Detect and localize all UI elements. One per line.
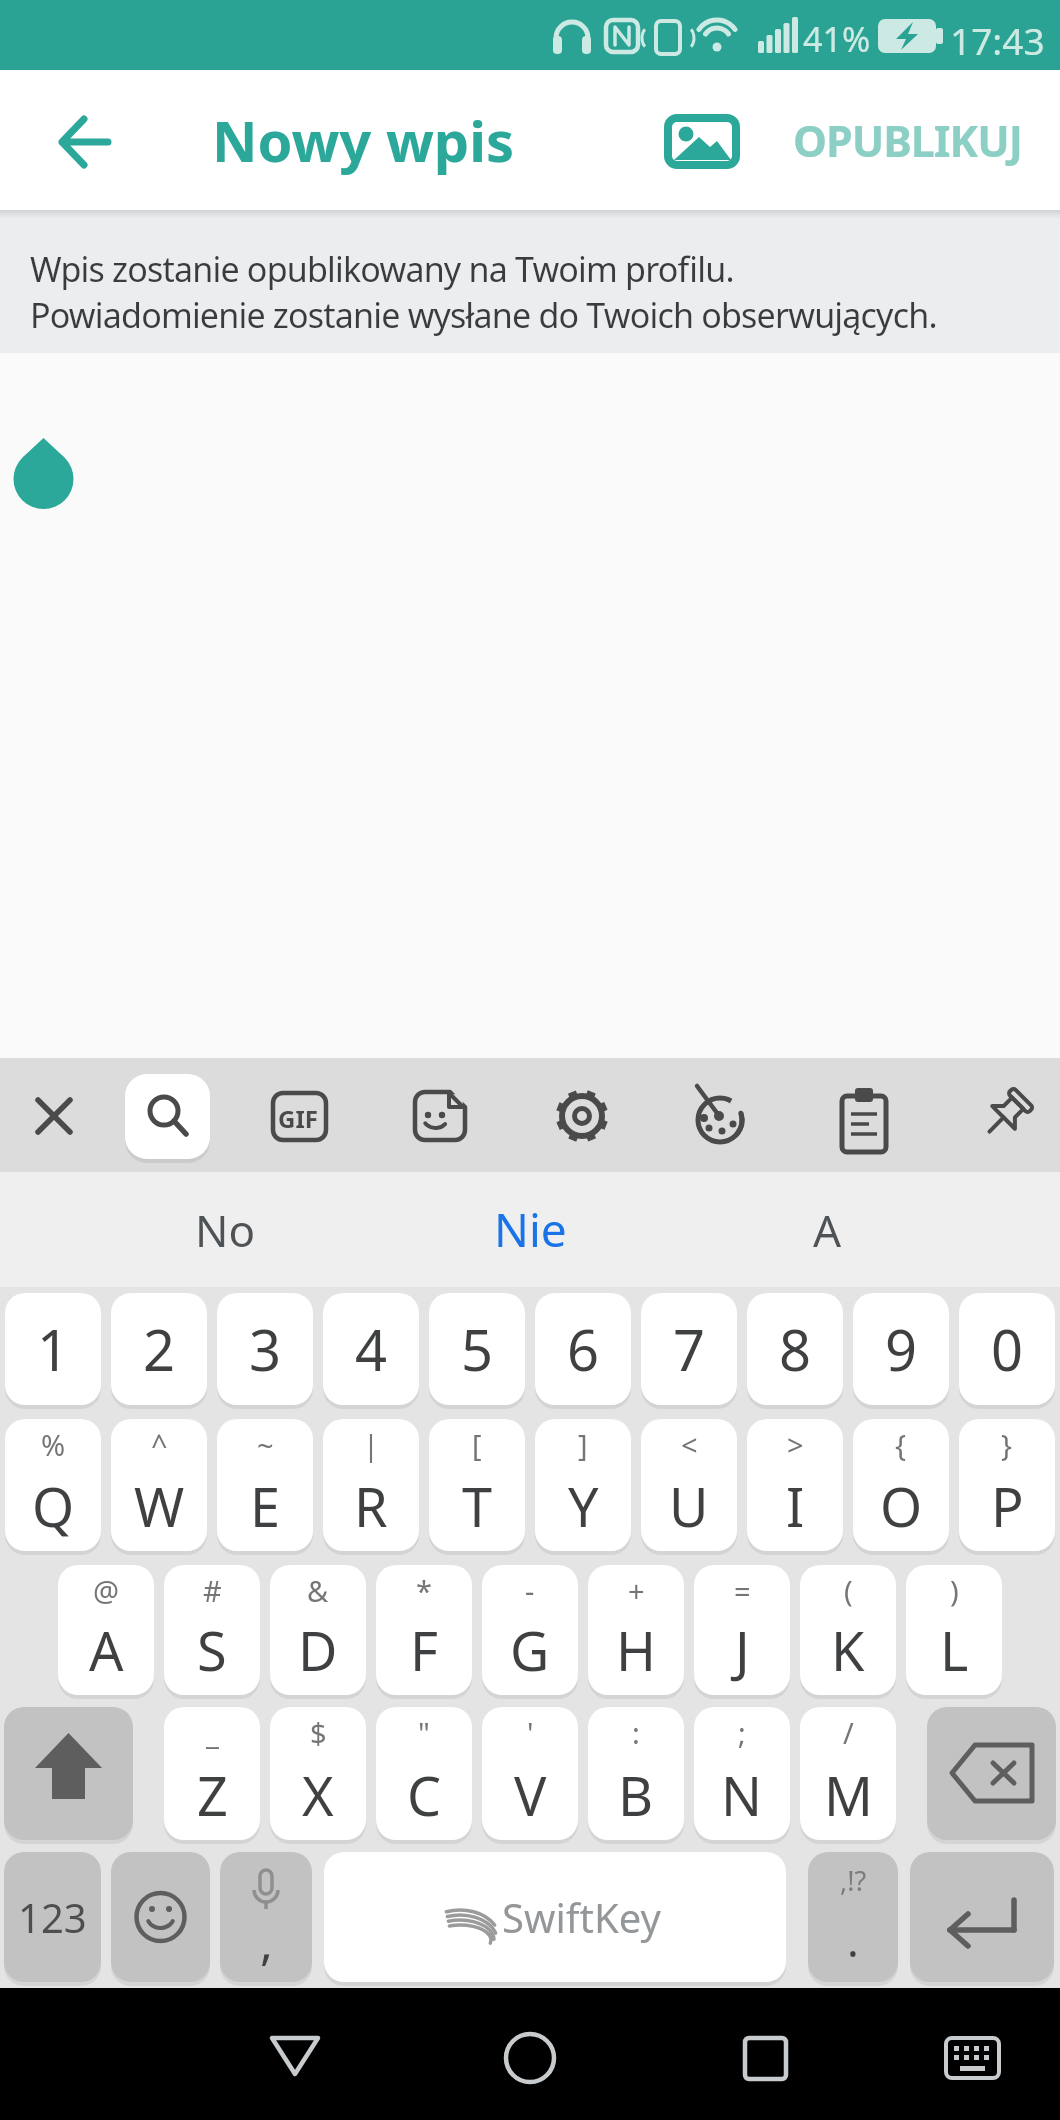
button[interactable]: 1 (5, 1293, 101, 1405)
staticText: S (197, 1613, 227, 1687)
button[interactable]: ,!? (808, 1852, 898, 1982)
staticText: @ (93, 1571, 120, 1610)
button[interactable]: > (747, 1419, 843, 1551)
staticText: 6 (567, 1311, 600, 1387)
button[interactable] (922, 2008, 1022, 2103)
button[interactable] (9, 1071, 99, 1161)
button[interactable]: ( (800, 1565, 896, 1695)
button[interactable] (111, 1852, 210, 1982)
button[interactable] (40, 97, 130, 187)
staticText: - (525, 1571, 535, 1610)
staticText: Nowy wpis (212, 102, 515, 178)
staticText: Nie (494, 1198, 567, 1261)
staticText: L (940, 1613, 969, 1687)
button[interactable]: 3 (217, 1293, 313, 1405)
button[interactable] (960, 1071, 1050, 1161)
staticText: H (616, 1613, 657, 1687)
staticText: J (735, 1613, 750, 1687)
button[interactable] (819, 1071, 909, 1161)
button[interactable]: - (482, 1565, 578, 1695)
button[interactable]: ) (906, 1565, 1002, 1695)
button[interactable]: [ (429, 1419, 525, 1551)
button[interactable]: ' (482, 1707, 578, 1840)
staticText: ( (844, 1571, 853, 1610)
button[interactable]: $ (270, 1707, 366, 1840)
button[interactable]: # (164, 1565, 260, 1695)
staticText: . (847, 1910, 859, 1970)
button[interactable]: % (5, 1419, 101, 1551)
button[interactable]: * (376, 1565, 472, 1695)
button[interactable]: } (959, 1419, 1055, 1551)
button[interactable]: < (641, 1419, 737, 1551)
button[interactable] (537, 1071, 627, 1161)
button[interactable]: ; (694, 1707, 790, 1840)
button[interactable]: A (707, 1172, 947, 1287)
staticText: ,!? (840, 1862, 867, 1899)
staticText: Wpis zostanie opublikowany na Twoim prof… (30, 246, 734, 292)
staticText: | (363, 1425, 379, 1464)
staticText: A (89, 1613, 124, 1687)
button[interactable] (480, 2008, 580, 2103)
staticText: [ (472, 1425, 482, 1464)
button[interactable]: No (105, 1172, 345, 1287)
button[interactable]: & (270, 1565, 366, 1695)
button[interactable]: 6 (535, 1293, 631, 1405)
button[interactable]: = (694, 1565, 790, 1695)
button[interactable]: 2 (111, 1293, 207, 1405)
button[interactable]: + (588, 1565, 684, 1695)
button[interactable] (125, 1074, 210, 1159)
staticText: T (462, 1469, 493, 1543)
button[interactable]: / (800, 1707, 896, 1840)
button[interactable]: " (376, 1707, 472, 1840)
button[interactable]: Nie (410, 1172, 650, 1287)
button[interactable] (715, 2008, 815, 2103)
staticText: No (195, 1200, 256, 1260)
button[interactable] (650, 95, 750, 185)
button[interactable]: 8 (747, 1293, 843, 1405)
button[interactable]: ~ (217, 1419, 313, 1551)
button[interactable]: { (853, 1419, 949, 1551)
button[interactable] (245, 2008, 345, 2103)
staticText: , (260, 1909, 273, 1974)
button[interactable]: ^ (111, 1419, 207, 1551)
staticText: F (410, 1613, 439, 1687)
button[interactable]: SwiftKey (324, 1852, 786, 1982)
staticText: B (618, 1758, 654, 1832)
button[interactable]: 9 (853, 1293, 949, 1405)
button[interactable]: | (323, 1419, 419, 1551)
button[interactable]: _ (164, 1707, 260, 1840)
button[interactable] (927, 1707, 1056, 1840)
staticText: Z (197, 1758, 228, 1832)
staticText: R (354, 1469, 388, 1543)
button[interactable]: 123 (4, 1852, 101, 1982)
button[interactable] (910, 1852, 1054, 1982)
staticText: 2 (143, 1311, 176, 1387)
button[interactable]: : (588, 1707, 684, 1840)
button[interactable]: 0 (959, 1293, 1055, 1405)
button[interactable]: ] (535, 1419, 631, 1551)
staticText: E (250, 1469, 281, 1543)
button[interactable]: OPUBLIKUJ (793, 111, 1022, 170)
staticText: # (203, 1571, 222, 1610)
button[interactable]: @ (58, 1565, 154, 1695)
staticText: ] (578, 1425, 588, 1464)
button[interactable]: 7 (641, 1293, 737, 1405)
button[interactable] (677, 1071, 767, 1161)
button[interactable] (4, 1707, 133, 1840)
staticText: + (628, 1571, 645, 1610)
button[interactable]: 5 (429, 1293, 525, 1405)
staticText: D (298, 1613, 338, 1687)
staticText: K (831, 1613, 865, 1687)
staticText: X (302, 1758, 334, 1832)
button[interactable] (254, 1071, 344, 1161)
button[interactable] (395, 1071, 485, 1161)
staticText: _ (206, 1713, 219, 1752)
staticText: 41% (803, 16, 871, 62)
staticText: I (786, 1469, 805, 1543)
staticText: 4 (355, 1311, 388, 1387)
staticText: * (416, 1571, 432, 1610)
button[interactable]: 4 (323, 1293, 419, 1405)
staticText: SwiftKey (502, 1890, 661, 1944)
staticText: > (787, 1425, 804, 1464)
button[interactable]: , (220, 1852, 312, 1982)
